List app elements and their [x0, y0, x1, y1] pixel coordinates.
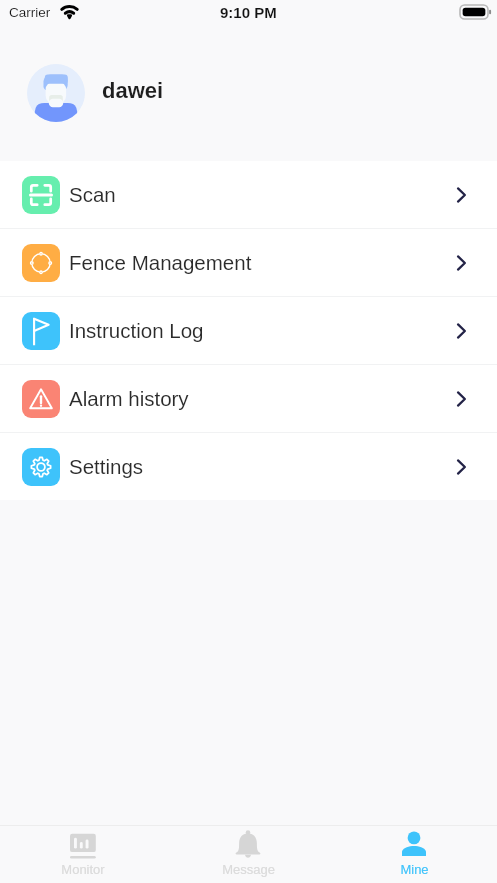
button[interactable]: Fence Management	[0, 229, 497, 296]
button[interactable]: Instruction Log	[0, 297, 497, 364]
button[interactable]: Monitor	[0, 826, 165, 883]
button[interactable]: Message	[165, 826, 331, 883]
staticText: Settings	[69, 455, 144, 478]
staticText: 9:10 PM	[220, 4, 277, 21]
button[interactable]: Alarm history	[0, 365, 497, 432]
staticText: dawei	[102, 78, 164, 103]
button[interactable]: Settings	[0, 433, 497, 500]
staticText: Carrier	[9, 5, 51, 20]
staticText: Fence Management	[69, 251, 252, 274]
staticText: Message	[222, 862, 275, 877]
staticText: Scan	[69, 183, 116, 206]
staticText: Instruction Log	[69, 319, 204, 342]
button[interactable]: Mine	[331, 826, 497, 883]
staticText: Alarm history	[69, 387, 189, 410]
staticText: Monitor	[61, 862, 105, 877]
staticText: Mine	[400, 862, 429, 877]
button[interactable]: Scan	[0, 161, 497, 228]
